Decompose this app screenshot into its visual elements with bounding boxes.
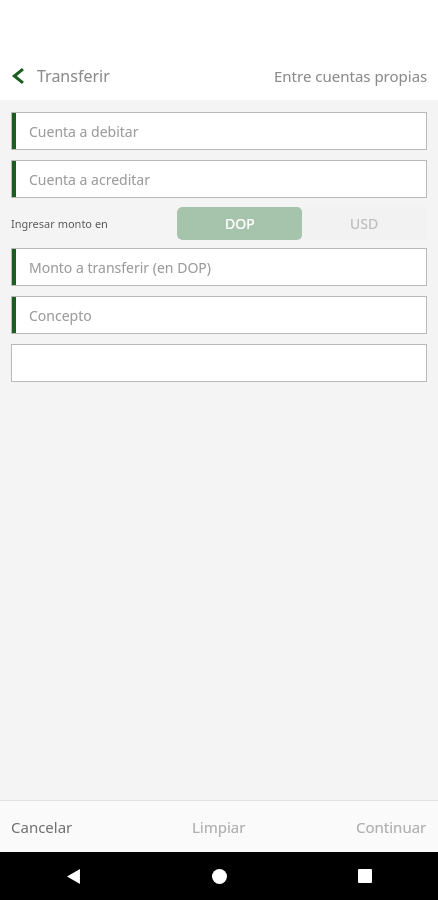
staticText: Limpiar (192, 817, 246, 837)
staticText: Monto a transferir (en DOP) (29, 258, 211, 277)
staticText: USD (350, 214, 379, 233)
staticText: Concepto (29, 306, 92, 325)
button[interactable]: Back (0, 852, 146, 900)
button[interactable]: DOP (177, 207, 302, 240)
button[interactable]: Home (146, 852, 292, 900)
staticText: Ingresar monto en (11, 216, 108, 231)
staticText: Transferir (37, 65, 110, 87)
button[interactable]: Concepto (11, 296, 427, 334)
staticText: Cuenta a acreditar (29, 170, 150, 189)
staticText: Continuar (356, 817, 427, 837)
button[interactable]: Cuenta a debitar (11, 112, 427, 150)
staticText: Entre cuentas propias (274, 66, 428, 86)
button[interactable]: Monto a transferir (en DOP) (11, 248, 427, 286)
staticText: Cuenta a debitar (29, 122, 139, 141)
button[interactable]: Continuar (292, 801, 438, 852)
button[interactable]: Recent apps (292, 852, 438, 900)
other: Back (10, 67, 28, 85)
button[interactable]: Limpiar (146, 801, 292, 852)
staticText: DOP (225, 214, 255, 233)
button[interactable]: USD (302, 207, 427, 240)
button[interactable]: Cuenta a acreditar (11, 160, 427, 198)
button[interactable] (11, 344, 427, 382)
button[interactable]: Cancelar (0, 801, 146, 852)
button[interactable]: Back (0, 59, 122, 93)
staticText: Cancelar (11, 817, 73, 837)
